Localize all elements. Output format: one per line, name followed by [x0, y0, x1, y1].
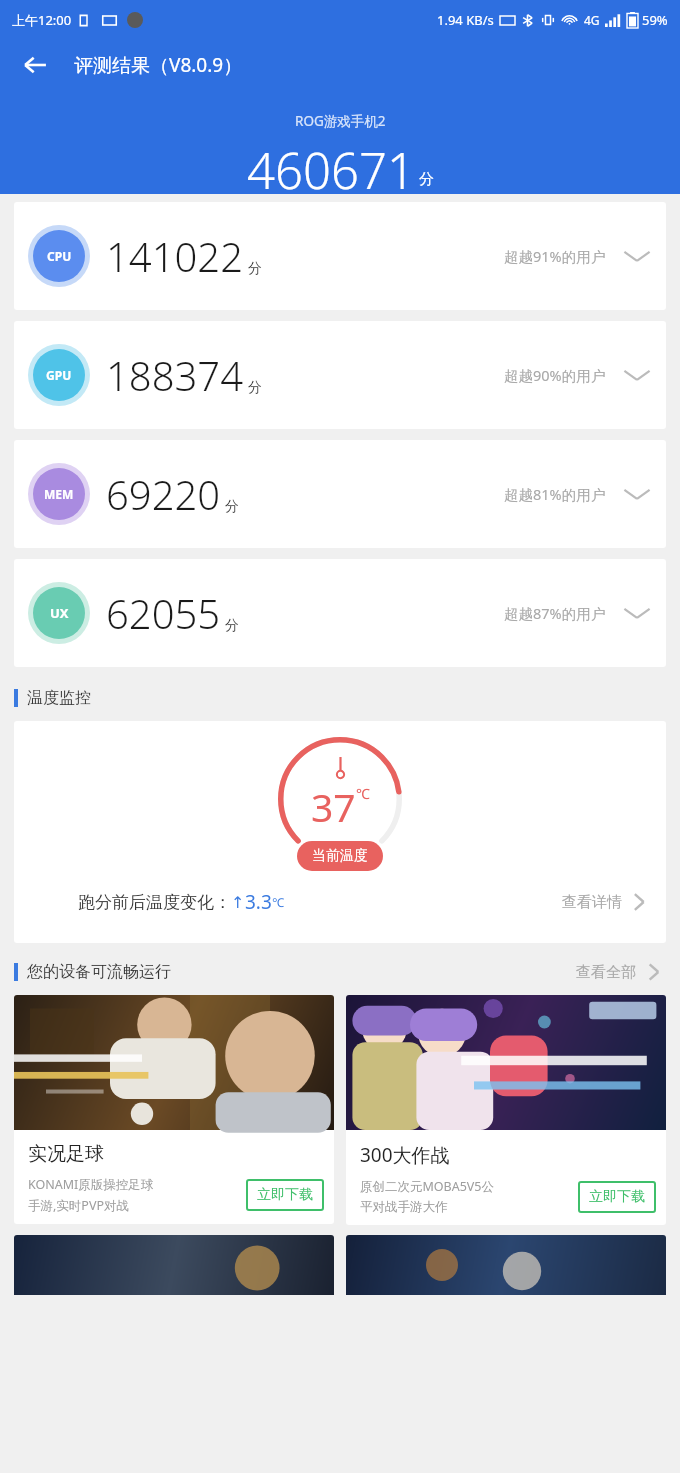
staticText: 37	[311, 780, 356, 833]
staticText: 59%	[642, 11, 668, 29]
button[interactable]: 立即下载	[578, 1181, 656, 1213]
button[interactable]: UX	[14, 559, 666, 667]
staticText: ↑	[231, 893, 245, 912]
staticText: GPU	[46, 367, 72, 383]
staticText: 当前温度	[312, 847, 368, 865]
button[interactable]: 300大作战	[346, 995, 666, 1225]
button[interactable]: 查看详情	[562, 889, 652, 915]
staticText: 3.3	[245, 889, 272, 915]
staticText: 超越87%的用户	[504, 603, 606, 623]
staticText: 分	[419, 170, 434, 189]
staticText: 分	[248, 379, 262, 397]
button[interactable]: CPU	[14, 202, 666, 310]
button[interactable]: Back	[10, 40, 60, 90]
staticText: 69220	[106, 467, 221, 521]
staticText: 评测结果（V8.0.9）	[74, 52, 243, 78]
staticText: 跑分前后温度变化：	[78, 892, 231, 913]
staticText: 原创二次元MOBA5V5公	[360, 1178, 495, 1195]
staticText: CPU	[47, 248, 72, 264]
staticText: 62055	[106, 586, 221, 640]
staticText: 141022	[106, 229, 244, 283]
staticText: UX	[50, 604, 69, 622]
staticText: 分	[248, 260, 262, 278]
button[interactable]: 立即下载	[246, 1179, 324, 1211]
staticText: 超越90%的用户	[504, 365, 606, 385]
staticText: 温度监控	[27, 688, 91, 708]
staticText: KONAMI原版操控足球	[28, 1176, 154, 1193]
button[interactable]: GPU	[14, 321, 666, 429]
staticText: 上午12:00	[12, 11, 72, 29]
staticText: 实况足球	[28, 1142, 104, 1166]
staticText: 300大作战	[360, 1142, 450, 1168]
staticText: ℃	[272, 894, 284, 910]
staticText: 平对战手游大作	[360, 1199, 448, 1215]
staticText: 分	[225, 498, 239, 516]
staticText: 查看全部	[576, 963, 636, 982]
button[interactable]: 查看全部	[576, 960, 666, 984]
staticText: 1.94 KB/s	[437, 11, 494, 29]
button[interactable]	[346, 1235, 666, 1295]
staticText: 立即下载	[257, 1186, 313, 1204]
staticText: ROG游戏手机2	[295, 112, 386, 130]
button[interactable]	[14, 1235, 334, 1295]
staticText: 手游,实时PVP对战	[28, 1197, 129, 1214]
staticText: 超越81%的用户	[504, 484, 606, 504]
staticText: 188374	[106, 348, 244, 402]
staticText: 分	[225, 617, 239, 635]
button[interactable]: MEM	[14, 440, 666, 548]
button[interactable]: 实况足球	[14, 995, 334, 1224]
staticText: 4G	[584, 12, 600, 28]
staticText: 超越91%的用户	[504, 246, 606, 266]
staticText: ℃	[356, 784, 370, 803]
staticText: MEM	[44, 486, 74, 502]
staticText: 查看详情	[562, 893, 622, 912]
staticText: 立即下载	[589, 1188, 645, 1206]
staticText: 您的设备可流畅运行	[27, 962, 171, 982]
staticText: 460671	[247, 137, 415, 194]
